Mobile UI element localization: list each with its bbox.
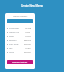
button[interactable]: Reason [7,38,33,42]
staticText: 12/04 [25,35,31,38]
staticText: Memo Details [13,15,28,18]
button[interactable]: Total [7,50,33,54]
button[interactable]: Memo No [7,30,33,34]
staticText: 12.50 [25,47,31,50]
button[interactable]: Customer [7,26,33,30]
staticText: Reason [9,39,17,42]
staticText: Create New Memo [21,4,44,7]
button[interactable]: CREATE MEMO [7,60,33,64]
button[interactable]: Date [7,34,33,38]
button[interactable]: Tax [7,46,33,50]
button[interactable]: Create New Memo [0,0,64,10]
staticText: Date [9,35,14,38]
button[interactable]: Sub Total [7,42,33,46]
button[interactable] [7,19,33,23]
staticText: Total [9,51,14,54]
staticText: Sub Total [9,43,19,46]
staticText: Memo No [9,31,20,34]
staticText: 262.50 [24,51,31,54]
staticText: CREATE MEMO [12,61,28,64]
staticText: ACME [25,27,31,30]
staticText: Return [24,39,31,42]
staticText: 250.00 [24,43,31,46]
staticText: Customer [9,27,20,30]
staticText: Tax [9,47,13,50]
staticText: 1024 [25,31,31,34]
